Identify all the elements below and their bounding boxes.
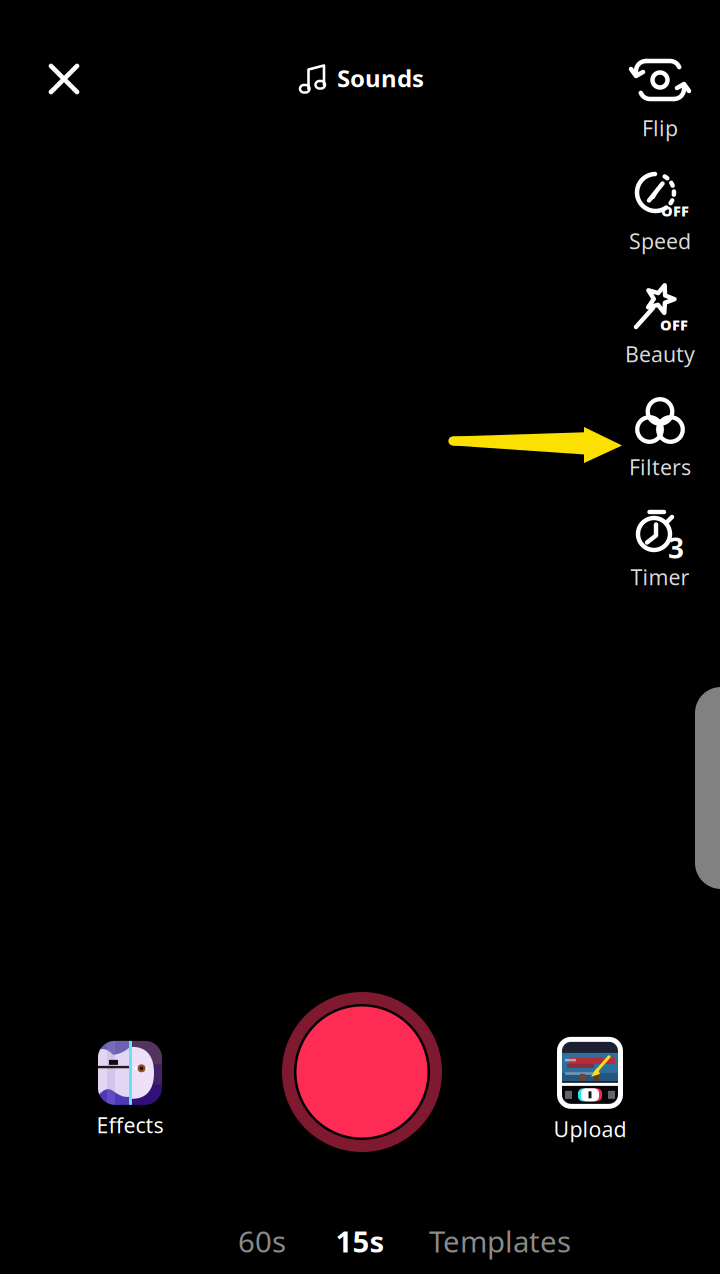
button[interactable]: 3 (604, 501, 716, 597)
button[interactable]: Close (26, 41, 102, 117)
staticText: Effects (96, 1111, 163, 1139)
button[interactable]: Filters (604, 391, 716, 487)
staticText: Upload (553, 1115, 626, 1143)
staticText: 3 (668, 529, 684, 566)
staticText: Sounds (337, 62, 424, 94)
button[interactable]: Effects (50, 1035, 210, 1145)
button[interactable]: Record (276, 986, 448, 1158)
button[interactable]: Flip (604, 52, 716, 148)
staticText: OFF (661, 201, 689, 220)
button[interactable]: Templates (416, 1208, 584, 1274)
button[interactable]: 60s (215, 1208, 309, 1274)
button[interactable]: 15s (316, 1208, 404, 1274)
staticText: Templates (429, 1221, 571, 1260)
staticText: OFF (660, 315, 688, 334)
button[interactable]: Sounds (300, 46, 424, 110)
staticText: Filters (629, 453, 691, 481)
staticText: Beauty (625, 340, 695, 368)
button[interactable]: Upload (510, 1035, 670, 1145)
staticText: 15s (335, 1221, 384, 1260)
staticText: Speed (629, 227, 691, 255)
staticText: Flip (642, 114, 678, 142)
button[interactable]: OFF (604, 278, 716, 374)
staticText: 60s (238, 1221, 286, 1260)
staticText: Timer (630, 563, 689, 591)
button[interactable]: OFF (604, 165, 716, 261)
